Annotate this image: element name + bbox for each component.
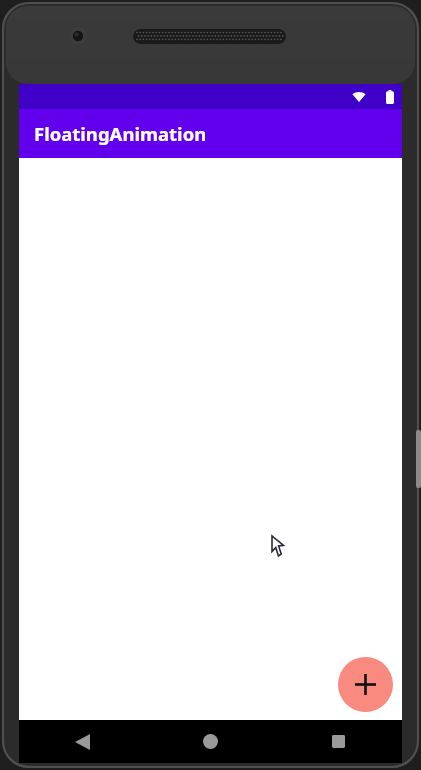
button[interactable]: Back: [19, 720, 146, 763]
button[interactable]: Home: [146, 720, 274, 763]
button[interactable]: Recent apps: [274, 720, 402, 763]
staticText: FloatingAnimation: [34, 121, 207, 146]
button[interactable]: Add: [338, 657, 393, 712]
